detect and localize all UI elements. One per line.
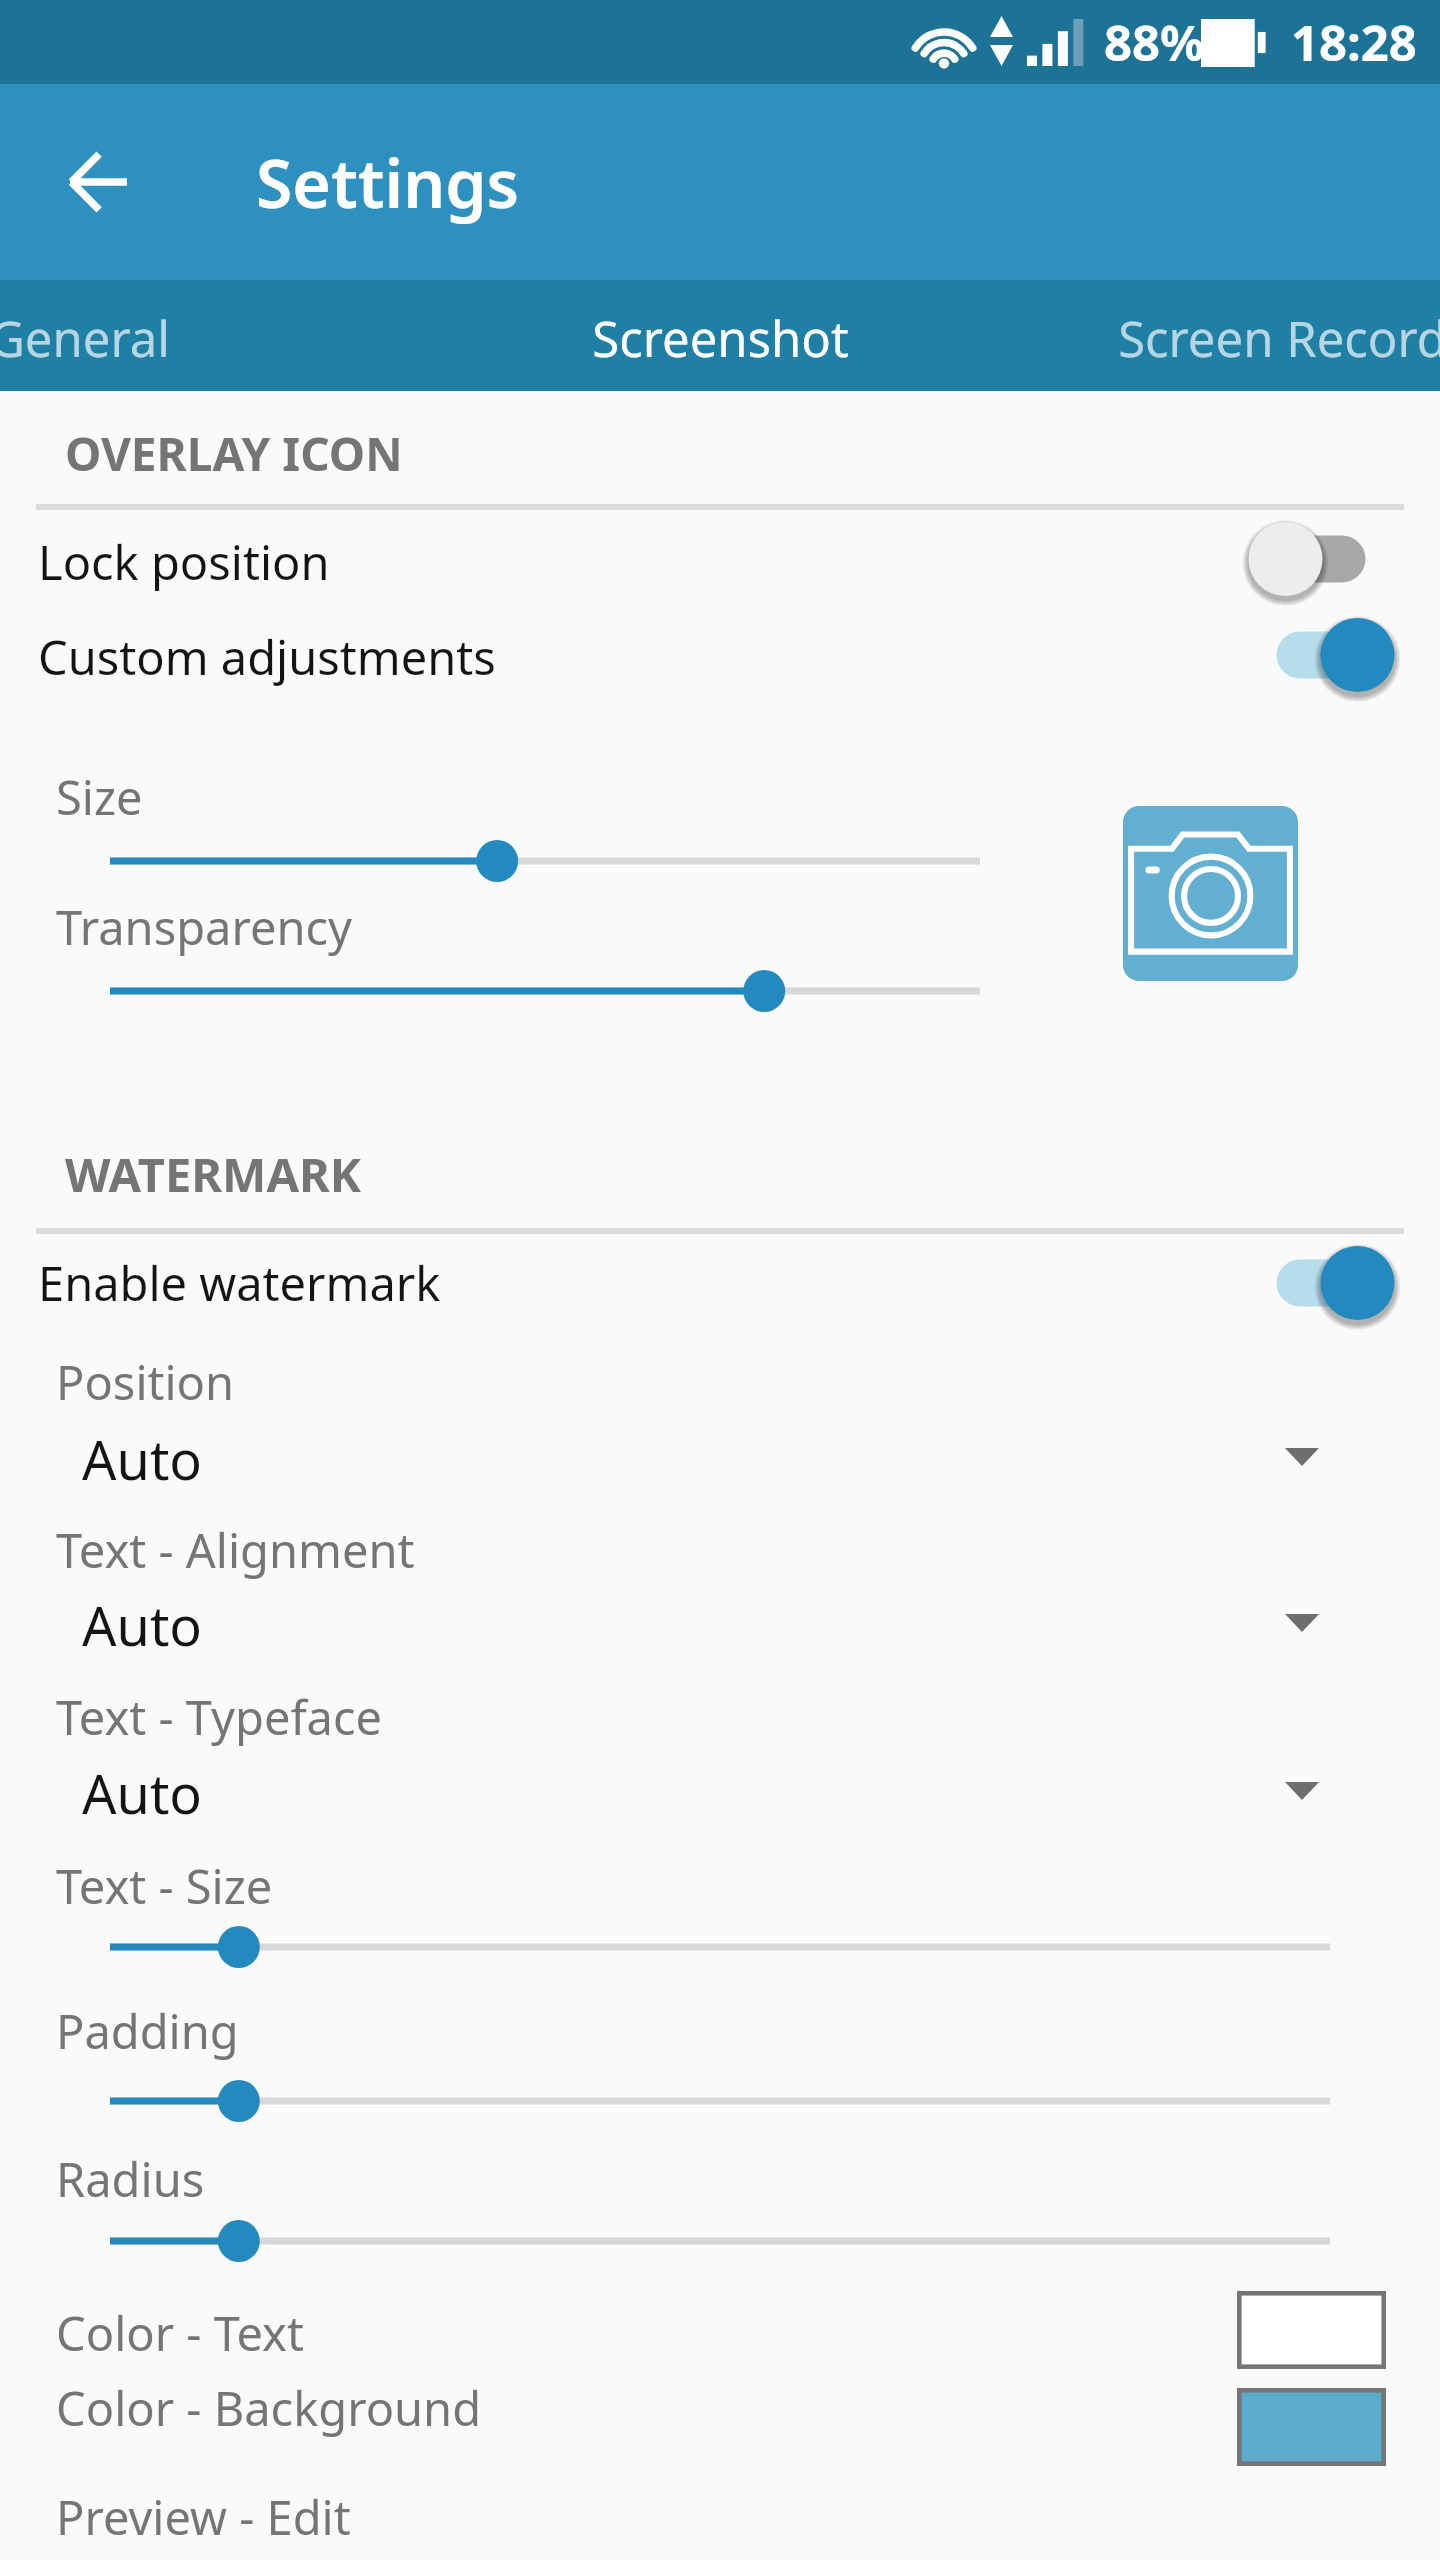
staticText: 88% <box>1104 9 1205 76</box>
staticText: Custom adjustments <box>38 625 496 689</box>
button[interactable]: Preview - Edit <box>0 2470 1440 2560</box>
button[interactable]: Lock position <box>0 514 1440 610</box>
staticText: WATERMARK <box>65 1142 361 1206</box>
button[interactable]: Color - Background <box>0 2360 1440 2456</box>
button[interactable]: Color - Text <box>0 2285 1440 2381</box>
staticText: Screen Record <box>1118 305 1440 372</box>
staticText: Text - Size <box>56 1854 273 1918</box>
staticText: Color - Text <box>56 2301 304 2365</box>
button[interactable]: Enable watermark <box>0 1235 1440 1331</box>
button[interactable]: Switch, on <box>1221 1233 1421 1333</box>
staticText: Text - Alignment <box>56 1518 415 1582</box>
button[interactable]: Switch, off <box>1221 509 1421 609</box>
button[interactable]: Overlay icon preview <box>1123 806 1298 981</box>
staticText: Text - Typeface <box>56 1685 382 1749</box>
button[interactable]: General <box>0 280 329 391</box>
staticText: OVERLAY ICON <box>65 422 403 485</box>
staticText: Size <box>56 765 143 829</box>
staticText: Settings <box>256 137 520 227</box>
staticText: Padding <box>56 1999 239 2063</box>
staticText: Radius <box>56 2147 205 2211</box>
button[interactable]: Color - Text colour swatch <box>1237 2291 1386 2369</box>
button[interactable]: Text - Typeface, Auto <box>0 1745 1440 1841</box>
button[interactable]: Transparency slider <box>0 951 1440 1031</box>
button[interactable]: Custom adjustments <box>0 609 1440 705</box>
button[interactable]: Screenshot <box>470 280 970 391</box>
staticText: Preview - Edit <box>56 2485 351 2549</box>
button[interactable]: Size slider <box>0 821 1440 901</box>
button[interactable]: Text - Size slider <box>0 1907 1440 1987</box>
staticText: Transparency <box>56 895 353 959</box>
staticText: Auto <box>82 1422 203 1496</box>
button[interactable]: Switch, on <box>1221 605 1421 705</box>
button[interactable]: Screen Record <box>1032 280 1440 391</box>
staticText: Color - Background <box>56 2376 482 2440</box>
staticText: Auto <box>82 1588 203 1662</box>
staticText: 18:28 <box>1291 9 1417 76</box>
button[interactable]: Color - Background colour swatch <box>1237 2388 1386 2466</box>
button[interactable]: Position, Auto <box>0 1411 1440 1507</box>
button[interactable]: Navigate up <box>48 132 148 232</box>
staticText: Lock position <box>38 530 330 594</box>
staticText: Enable watermark <box>38 1251 441 1315</box>
staticText: Screenshot <box>592 305 849 372</box>
button[interactable]: Radius slider <box>0 2201 1440 2281</box>
button[interactable]: Text - Alignment, Auto <box>0 1577 1440 1673</box>
staticText: Auto <box>82 1756 203 1830</box>
staticText: Position <box>56 1350 235 1414</box>
staticText: General <box>0 305 170 372</box>
button[interactable]: Padding slider <box>0 2061 1440 2141</box>
